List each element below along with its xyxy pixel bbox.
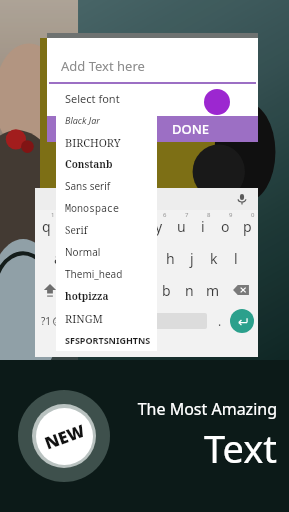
staticText: k bbox=[210, 249, 218, 268]
staticText: 0 bbox=[251, 211, 255, 219]
staticText: i bbox=[201, 217, 205, 236]
button[interactable]: Voice input bbox=[234, 191, 250, 207]
staticText: h bbox=[166, 249, 175, 268]
staticText: NEW bbox=[41, 418, 89, 454]
staticText: j bbox=[190, 249, 194, 268]
staticText: Normal bbox=[65, 245, 101, 259]
button[interactable]: Symbols bbox=[35, 306, 67, 336]
button[interactable]: w bbox=[58, 210, 81, 242]
staticText: 6 bbox=[163, 211, 167, 219]
staticText: hotpizza bbox=[65, 289, 109, 303]
button[interactable]: Pick colour bbox=[204, 89, 230, 115]
button[interactable]: RINGM bbox=[56, 307, 157, 329]
staticText: a bbox=[54, 249, 62, 268]
staticText: Serif bbox=[65, 223, 88, 237]
button[interactable]: . bbox=[210, 306, 230, 336]
button[interactable]: p bbox=[236, 210, 258, 242]
button[interactable]: hotpizza bbox=[56, 285, 157, 307]
button[interactable]: q bbox=[35, 210, 58, 242]
button[interactable]: Select font bbox=[56, 87, 157, 109]
button[interactable]: SFSPORTSNIGHTNS bbox=[56, 329, 157, 351]
button[interactable]: Sans serif bbox=[56, 175, 157, 197]
button[interactable]: m bbox=[201, 274, 224, 306]
button[interactable]: j bbox=[181, 242, 203, 274]
button[interactable]: l bbox=[225, 242, 247, 274]
button[interactable]: b bbox=[155, 274, 178, 306]
staticText: RINGM bbox=[65, 311, 103, 326]
staticText: Black Jar bbox=[65, 114, 100, 126]
staticText: q bbox=[42, 217, 51, 236]
staticText: ?1 bbox=[41, 314, 52, 328]
staticText: BIRCHORY bbox=[65, 135, 121, 150]
staticText: Themi_head bbox=[65, 267, 123, 281]
button[interactable]: i bbox=[192, 210, 214, 242]
button[interactable]: Space bbox=[116, 313, 207, 329]
button[interactable]: Themi_head bbox=[56, 263, 157, 285]
staticText: Sans serif bbox=[65, 179, 111, 193]
staticText: l bbox=[234, 249, 238, 268]
button[interactable]: u bbox=[170, 210, 192, 242]
staticText: w bbox=[64, 217, 76, 236]
button[interactable]: Serif bbox=[56, 219, 157, 241]
staticText: b bbox=[162, 281, 171, 300]
staticText: , bbox=[76, 313, 80, 329]
button[interactable]: Monospace bbox=[56, 197, 157, 219]
button[interactable]: Black Jar bbox=[56, 109, 157, 131]
staticText: p bbox=[243, 217, 252, 236]
button[interactable]: New bbox=[18, 390, 110, 482]
staticText: Constanb bbox=[65, 157, 113, 171]
button[interactable]: d bbox=[92, 242, 115, 274]
button[interactable]: h bbox=[159, 242, 181, 274]
staticText: y bbox=[155, 217, 163, 236]
button[interactable]: Add Text here bbox=[47, 50, 258, 82]
staticText: n bbox=[185, 281, 194, 300]
staticText: x bbox=[94, 281, 102, 300]
staticText: z bbox=[73, 281, 80, 300]
button[interactable]: f bbox=[115, 242, 137, 274]
staticText: Add Text here bbox=[61, 57, 145, 75]
staticText: m bbox=[206, 281, 220, 300]
staticText: . bbox=[218, 313, 222, 329]
staticText: SFSPORTSNIGHTNS bbox=[65, 334, 151, 346]
button[interactable]: , bbox=[67, 306, 89, 336]
staticText: Monospace bbox=[65, 201, 119, 215]
button[interactable]: Enter bbox=[230, 309, 254, 333]
button[interactable]: n bbox=[178, 274, 201, 306]
button[interactable]: c bbox=[109, 274, 132, 306]
button[interactable]: a bbox=[46, 242, 69, 274]
button[interactable]: e bbox=[81, 210, 104, 242]
staticText: Select font bbox=[65, 91, 120, 106]
button[interactable]: k bbox=[203, 242, 225, 274]
button[interactable]: z bbox=[65, 274, 87, 306]
button[interactable]: o bbox=[214, 210, 236, 242]
staticText: 7 bbox=[185, 211, 189, 219]
button[interactable]: Backspace bbox=[224, 274, 258, 306]
button[interactable]: r bbox=[104, 210, 126, 242]
button[interactable]: Normal bbox=[56, 241, 157, 263]
staticText: now learn to learn. bbox=[70, 154, 132, 164]
button[interactable]: Shift bbox=[35, 274, 65, 306]
staticText: Text bbox=[204, 422, 277, 474]
button[interactable]: x bbox=[87, 274, 109, 306]
staticText: d bbox=[99, 249, 108, 268]
button[interactable]: g bbox=[137, 242, 159, 274]
button[interactable]: s bbox=[69, 242, 92, 274]
button[interactable]: DONE bbox=[47, 116, 258, 142]
button[interactable]: Language bbox=[89, 306, 113, 336]
staticText: 1 bbox=[51, 211, 55, 219]
button[interactable]: Constanb bbox=[56, 153, 157, 175]
staticText: 2 bbox=[74, 211, 78, 219]
button[interactable]: y bbox=[148, 210, 170, 242]
button[interactable]: BIRCHORY bbox=[56, 131, 157, 153]
